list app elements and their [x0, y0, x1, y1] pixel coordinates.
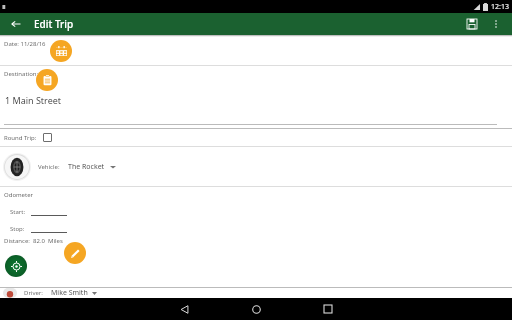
staticText: Odometer	[4, 191, 34, 199]
button[interactable]	[31, 225, 67, 233]
button[interactable]: Round trip checkbox	[43, 133, 52, 142]
button[interactable]: Vehicle:	[0, 147, 512, 186]
staticText: Destination:	[4, 70, 39, 78]
button[interactable]: Home	[243, 298, 269, 320]
staticText: 1 Main Street	[5, 94, 62, 106]
staticText: Mike Smith	[51, 288, 88, 298]
staticText: Driver:	[24, 289, 43, 297]
button[interactable]: More options	[486, 14, 506, 34]
button[interactable]: Current location	[5, 255, 27, 277]
button[interactable]: Recents	[315, 298, 341, 320]
button[interactable]: Save	[462, 14, 482, 34]
staticText: Distance: 82.0 Miles	[4, 237, 63, 245]
button[interactable]: Back	[171, 298, 197, 320]
staticText: Stop:	[10, 225, 25, 233]
staticText: Vehicle:	[38, 163, 60, 171]
button[interactable]: Edit odometer	[64, 242, 86, 264]
staticText: Round Trip:	[4, 134, 37, 142]
button[interactable]: Destination:	[0, 66, 512, 128]
staticText: Date: 11/28/16	[4, 40, 46, 48]
button[interactable]: Driver:	[0, 288, 512, 298]
staticText: Edit Trip	[34, 17, 74, 31]
button[interactable]: Pick date	[50, 40, 72, 62]
staticText: 12:13	[491, 2, 509, 12]
staticText: Start:	[10, 208, 26, 216]
button[interactable]: Date: 11/28/16	[0, 37, 512, 65]
button[interactable]: Back	[8, 16, 24, 32]
staticText: The Rocket	[68, 162, 105, 172]
button[interactable]: Edit destination	[36, 69, 58, 91]
button[interactable]	[31, 208, 67, 216]
